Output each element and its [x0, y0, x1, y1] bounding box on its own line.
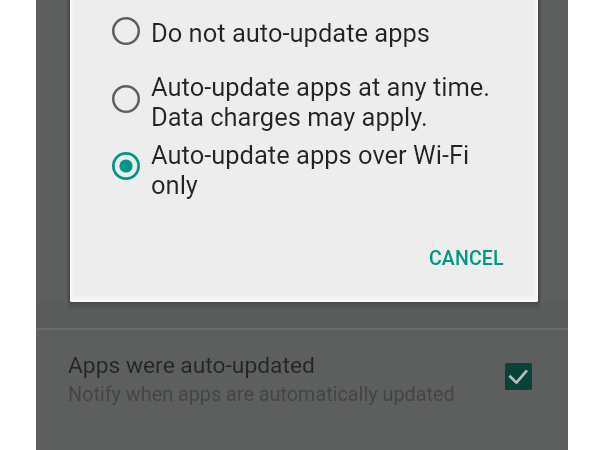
staticText: only [151, 170, 198, 200]
button[interactable]: Do not auto-update apps [70, 4, 538, 54]
staticText: Data charges may apply. [151, 102, 428, 132]
staticText: Auto-update apps at any time. [151, 72, 491, 102]
staticText: Notify when apps are automatically updat… [68, 383, 455, 406]
staticText: Auto-update apps over Wi-Fi [151, 140, 470, 170]
button[interactable]: Auto-update apps at any time. [70, 58, 538, 128]
button[interactable]: Auto-update apps over Wi-Fi [70, 126, 538, 196]
button[interactable]: CANCEL [415, 235, 518, 281]
button[interactable]: Notify when apps are automatically updat… [505, 363, 532, 390]
button[interactable]: Apps were auto-updated [36, 329, 568, 424]
staticText: Do not auto-update apps [151, 18, 430, 48]
staticText: Apps were auto-updated [68, 352, 315, 379]
staticText: CANCEL [429, 247, 504, 270]
